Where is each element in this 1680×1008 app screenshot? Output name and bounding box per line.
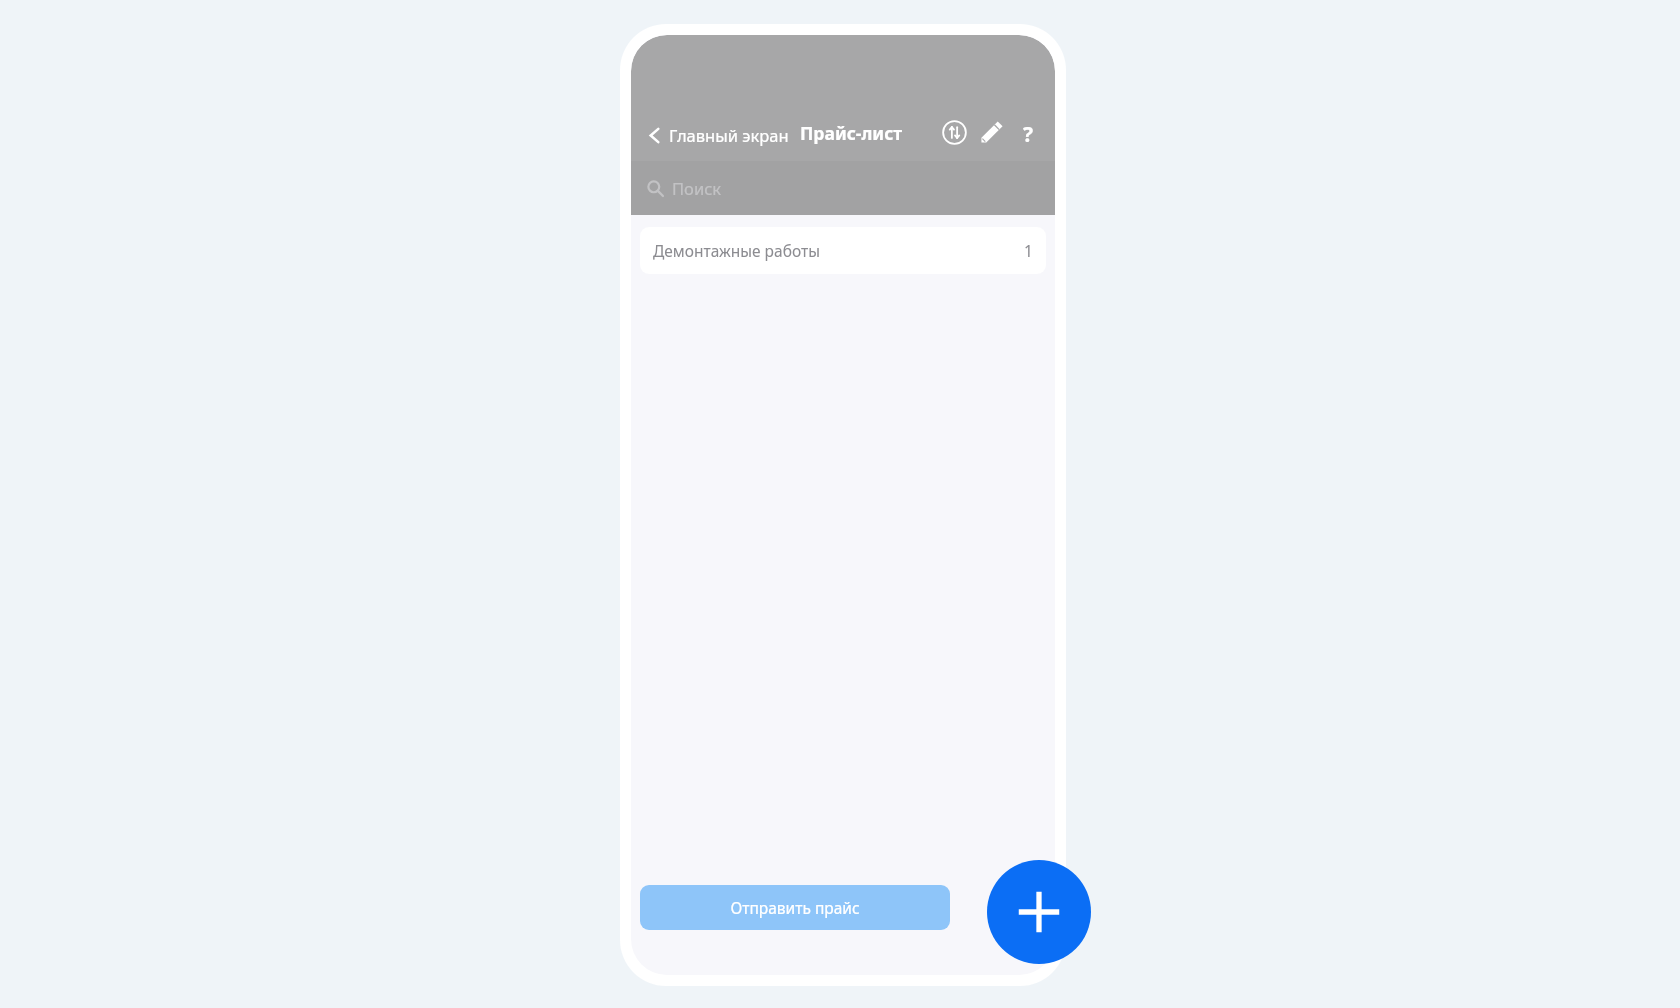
staticText: Отправить прайс: [730, 897, 860, 918]
button[interactable]: Редактировать: [973, 113, 1011, 151]
staticText: Главный экран: [669, 124, 789, 146]
staticText: Прайс-лист: [800, 121, 903, 145]
button[interactable]: Главный экран: [639, 119, 795, 151]
staticText: 1: [1024, 240, 1033, 261]
staticText: ?: [1023, 120, 1034, 149]
staticText: Поиск: [672, 177, 722, 199]
button[interactable]: Поиск: [631, 161, 1055, 215]
button[interactable]: Отправить прайс: [640, 885, 950, 930]
staticText: Демонтажные работы: [653, 240, 820, 261]
button[interactable]: Справка: [1011, 117, 1045, 151]
button[interactable]: Демонтажные работы: [640, 227, 1046, 274]
button[interactable]: Добавить: [987, 860, 1091, 964]
button[interactable]: Сортировка: [935, 113, 973, 151]
